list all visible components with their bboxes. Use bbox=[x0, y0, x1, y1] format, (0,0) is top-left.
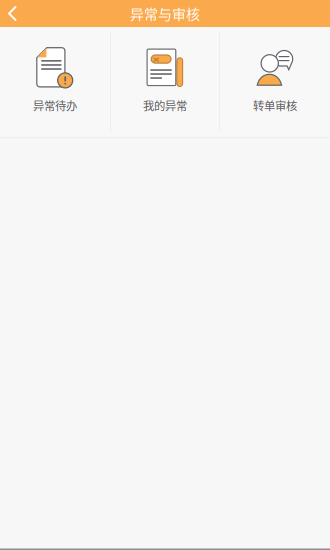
staticText: 我的异常 bbox=[143, 97, 187, 113]
button[interactable]: Back bbox=[0, 0, 25, 27]
staticText: 转单审核 bbox=[253, 97, 297, 113]
staticText: 异常待办 bbox=[33, 97, 77, 113]
button[interactable]: 我的异常 bbox=[110, 30, 220, 133]
button[interactable]: 转单审核 bbox=[220, 30, 330, 133]
staticText: 异常与审核 bbox=[130, 3, 200, 24]
button[interactable]: 异常待办 bbox=[0, 30, 110, 133]
